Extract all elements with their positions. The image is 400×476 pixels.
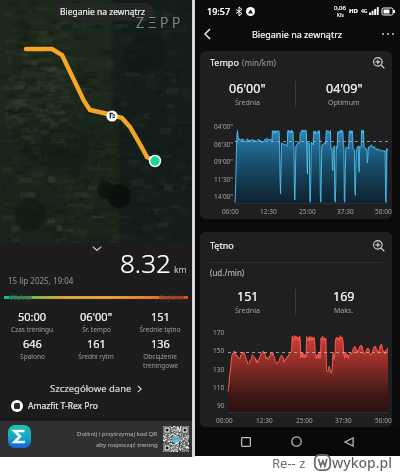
- staticText: 4G: [361, 8, 368, 15]
- button[interactable]: Amazfit T-Rex Pro: [0, 398, 192, 414]
- staticText: 19:57: [207, 5, 231, 17]
- staticText: Spalono: [20, 352, 45, 361]
- button[interactable]: Bieganie na zewnątrz: [52, 3, 154, 21]
- button[interactable]: Zoom in: [370, 54, 386, 70]
- button[interactable]: Back: [338, 431, 359, 452]
- staticText: Średni rytm: [78, 352, 114, 361]
- staticText: 11'30": [214, 175, 233, 183]
- staticText: 150: [213, 346, 225, 354]
- staticText: 04'09": [326, 80, 363, 97]
- staticText: Szybko: [160, 293, 183, 303]
- button[interactable]: Szczegółowe dane: [0, 379, 192, 398]
- staticText: 37:30: [337, 207, 354, 216]
- staticText: 06'00": [229, 80, 266, 97]
- staticText: 161: [87, 336, 106, 351]
- staticText: Szczegółowe dane: [50, 382, 132, 395]
- staticText: Amazfit T-Rex Pro: [28, 400, 98, 412]
- staticText: 169: [333, 288, 355, 305]
- button[interactable]: Zoom in: [370, 237, 386, 253]
- staticText: 14'00": [214, 192, 233, 200]
- staticText: (ud./min): [210, 267, 245, 278]
- staticText: 90: [217, 401, 225, 409]
- staticText: Bieganie na zewnątrz: [60, 6, 146, 18]
- staticText: 04'00": [214, 122, 233, 130]
- staticText: 0,06: [334, 4, 346, 12]
- staticText: Tempo: [210, 56, 239, 68]
- staticText: 646: [23, 336, 42, 351]
- staticText: 06'30": [214, 140, 233, 148]
- staticText: Re-- z: [272, 454, 306, 472]
- staticText: 00:00: [222, 207, 239, 216]
- staticText: 151: [151, 309, 170, 324]
- staticText: 50:00: [375, 416, 392, 425]
- staticText: 8.32: [120, 245, 171, 280]
- staticText: km: [174, 264, 187, 276]
- button[interactable]: Home: [286, 431, 307, 452]
- staticText: 00:00: [216, 416, 233, 425]
- staticText: P: [172, 13, 181, 32]
- staticText: 09'00": [214, 157, 233, 165]
- staticText: Dotknij i przytrzymaj kod QR: [77, 430, 158, 438]
- staticText: 151: [237, 288, 259, 305]
- staticText: 110: [213, 383, 225, 391]
- button[interactable]: Back: [195, 22, 219, 46]
- staticText: Optimum: [328, 98, 360, 108]
- staticText: 12:30: [260, 207, 277, 216]
- staticText: Średnia: [235, 98, 260, 108]
- staticText: Maks.: [334, 306, 354, 316]
- staticText: 06'00": [80, 309, 113, 324]
- staticText: Tętno: [210, 239, 234, 251]
- staticText: treningowe: [143, 361, 178, 370]
- staticText: 136: [151, 336, 170, 351]
- staticText: 15 lip 2025, 19:04: [8, 275, 74, 286]
- staticText: Średnia: [235, 306, 260, 316]
- staticText: 170: [213, 328, 225, 336]
- staticText: K/s: [337, 12, 344, 18]
- staticText: wykop.pl: [332, 453, 393, 472]
- staticText: 12:30: [256, 416, 273, 425]
- button[interactable]: More options: [376, 22, 400, 46]
- staticText: Czas treningu: [11, 325, 53, 334]
- staticText: 130: [213, 365, 225, 373]
- staticText: P: [160, 13, 169, 32]
- button[interactable]: Recent apps: [235, 431, 256, 452]
- staticText: HD: [349, 7, 358, 15]
- staticText: Wolno: [10, 293, 31, 303]
- staticText: 50:00: [18, 309, 47, 324]
- staticText: aby rozpocząć trening: [96, 441, 158, 449]
- staticText: 25:00: [296, 416, 313, 425]
- staticText: 37:30: [335, 416, 352, 425]
- staticText: Bieganie na zewnątrz: [252, 28, 343, 40]
- staticText: Średnie tętno: [139, 325, 181, 334]
- staticText: Śr. tempo: [82, 325, 111, 334]
- staticText: 25:00: [299, 207, 316, 216]
- staticText: Obciążenie: [143, 352, 177, 361]
- staticText: Z: [136, 13, 145, 32]
- staticText: Ξ: [148, 13, 157, 32]
- staticText: (min/km): [242, 57, 277, 68]
- staticText: 50:00: [375, 207, 392, 216]
